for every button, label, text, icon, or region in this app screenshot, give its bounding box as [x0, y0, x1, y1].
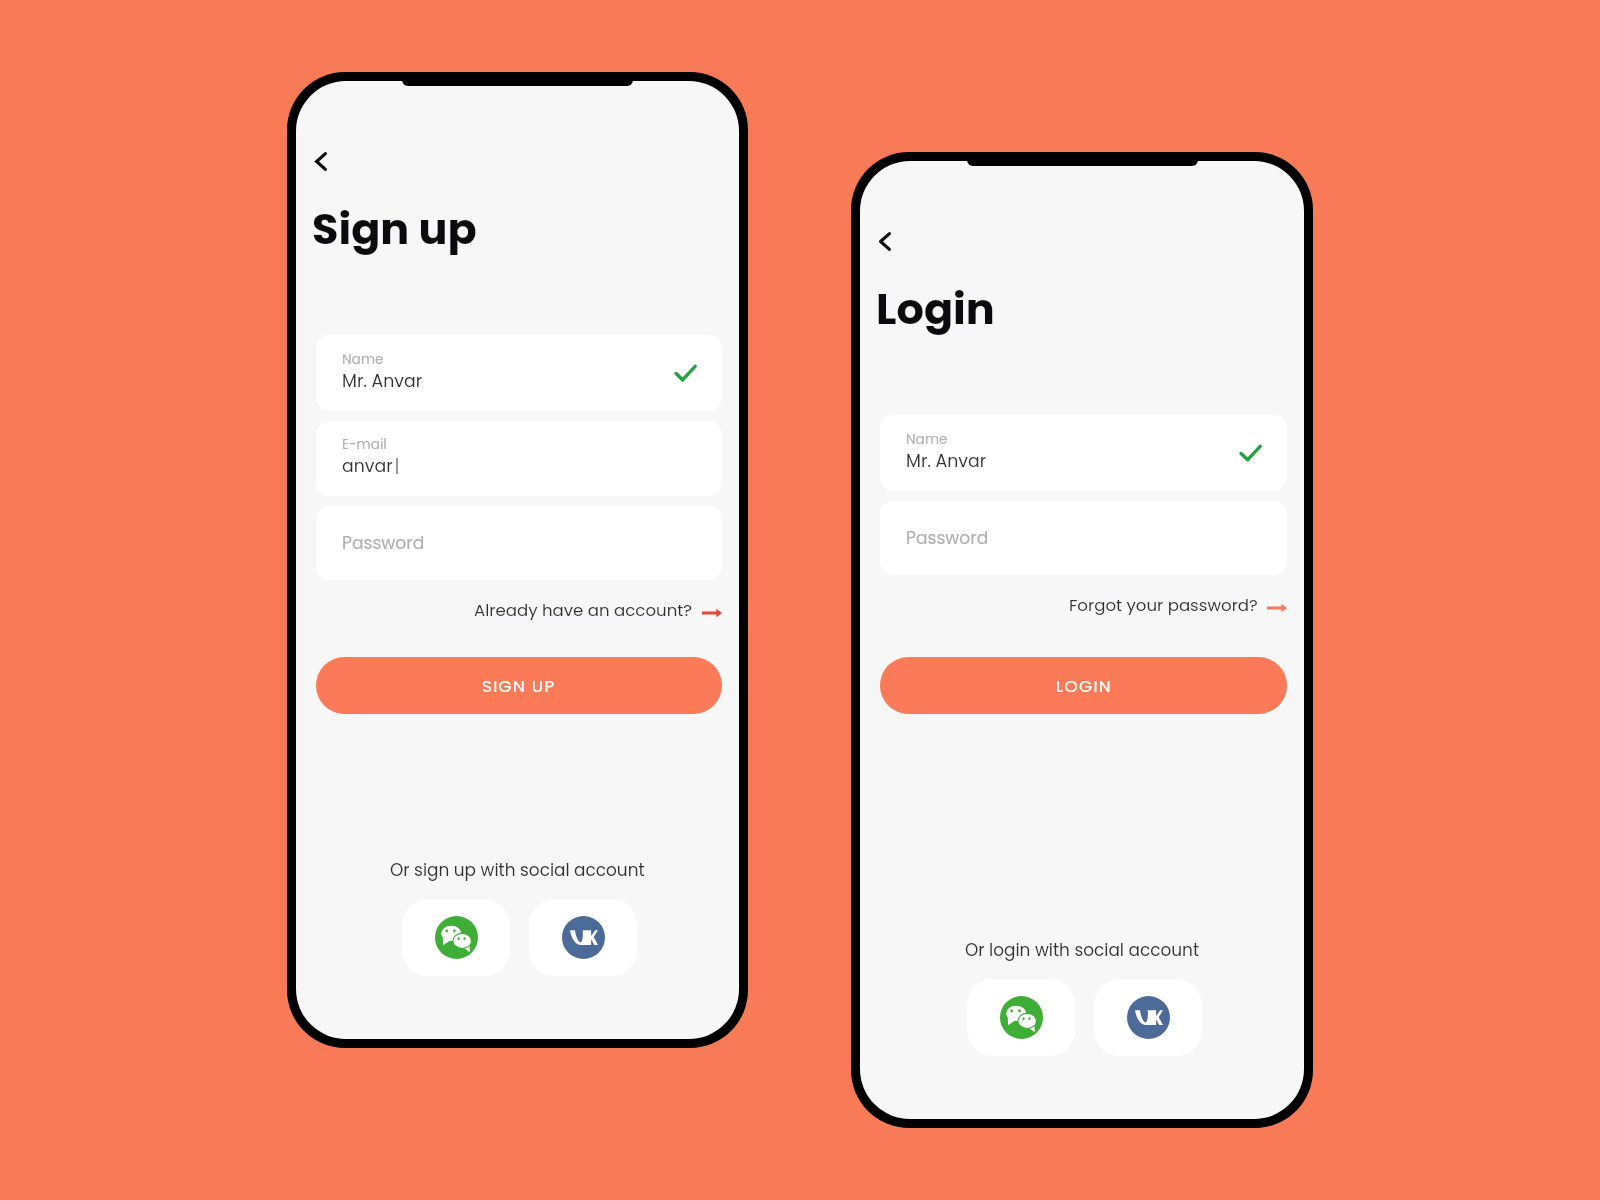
staticText: Login: [876, 279, 995, 339]
button[interactable]: Forgot your password?: [1069, 594, 1287, 617]
button[interactable]: Already have an account?: [474, 599, 722, 622]
staticText: LOGIN: [1056, 674, 1112, 698]
staticText: Name: [342, 350, 384, 369]
button[interactable]: Name: [880, 415, 1287, 491]
button[interactable]: E-mail: [316, 421, 722, 496]
staticText: Password: [342, 531, 425, 555]
button[interactable]: Password: [316, 506, 722, 580]
staticText: Sign up: [312, 199, 477, 259]
staticText: Mr. Anvar: [342, 369, 423, 393]
staticText: Password: [906, 526, 989, 550]
staticText: Or sign up with social account: [390, 858, 645, 882]
staticText: anvar: [342, 454, 393, 478]
button[interactable]: Name: [316, 335, 722, 411]
button[interactable]: Continue with WeChat: [967, 979, 1075, 1056]
button[interactable]: Continue with WeChat: [402, 899, 510, 976]
button[interactable]: SIGN UP: [316, 657, 722, 714]
staticText: E-mail: [342, 435, 387, 454]
staticText: Mr. Anvar: [906, 449, 987, 473]
button[interactable]: Back: [299, 139, 343, 183]
staticText: Already have an account?: [474, 599, 693, 622]
button[interactable]: Continue with VK: [1094, 979, 1202, 1056]
button[interactable]: LOGIN: [880, 657, 1287, 714]
staticText: Name: [906, 430, 948, 449]
button[interactable]: Password: [880, 501, 1287, 575]
staticText: SIGN UP: [482, 674, 556, 698]
staticText: Forgot your password?: [1069, 594, 1258, 617]
button[interactable]: Back: [863, 219, 907, 263]
staticText: Or login with social account: [965, 938, 1200, 962]
button[interactable]: Continue with VK: [529, 899, 637, 976]
